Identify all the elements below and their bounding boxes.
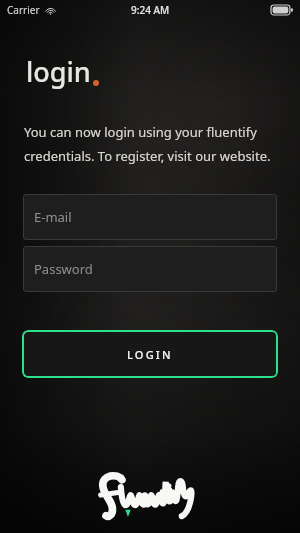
staticText: You can now login using your fluentify [24, 123, 257, 141]
staticText: 9:24 AM [131, 3, 170, 17]
staticText: Carrier [7, 3, 40, 17]
button[interactable]: LOGIN [22, 330, 278, 378]
staticText: Password [34, 260, 93, 278]
staticText: E-mail [34, 208, 72, 226]
staticText: LOGIN [127, 347, 173, 362]
staticText: login [26, 53, 91, 90]
other: fluentify logo [97, 472, 203, 518]
staticText: credentials. To register, visit our webs… [24, 147, 271, 165]
button[interactable]: Password [23, 246, 277, 292]
button[interactable]: E-mail [23, 194, 277, 240]
